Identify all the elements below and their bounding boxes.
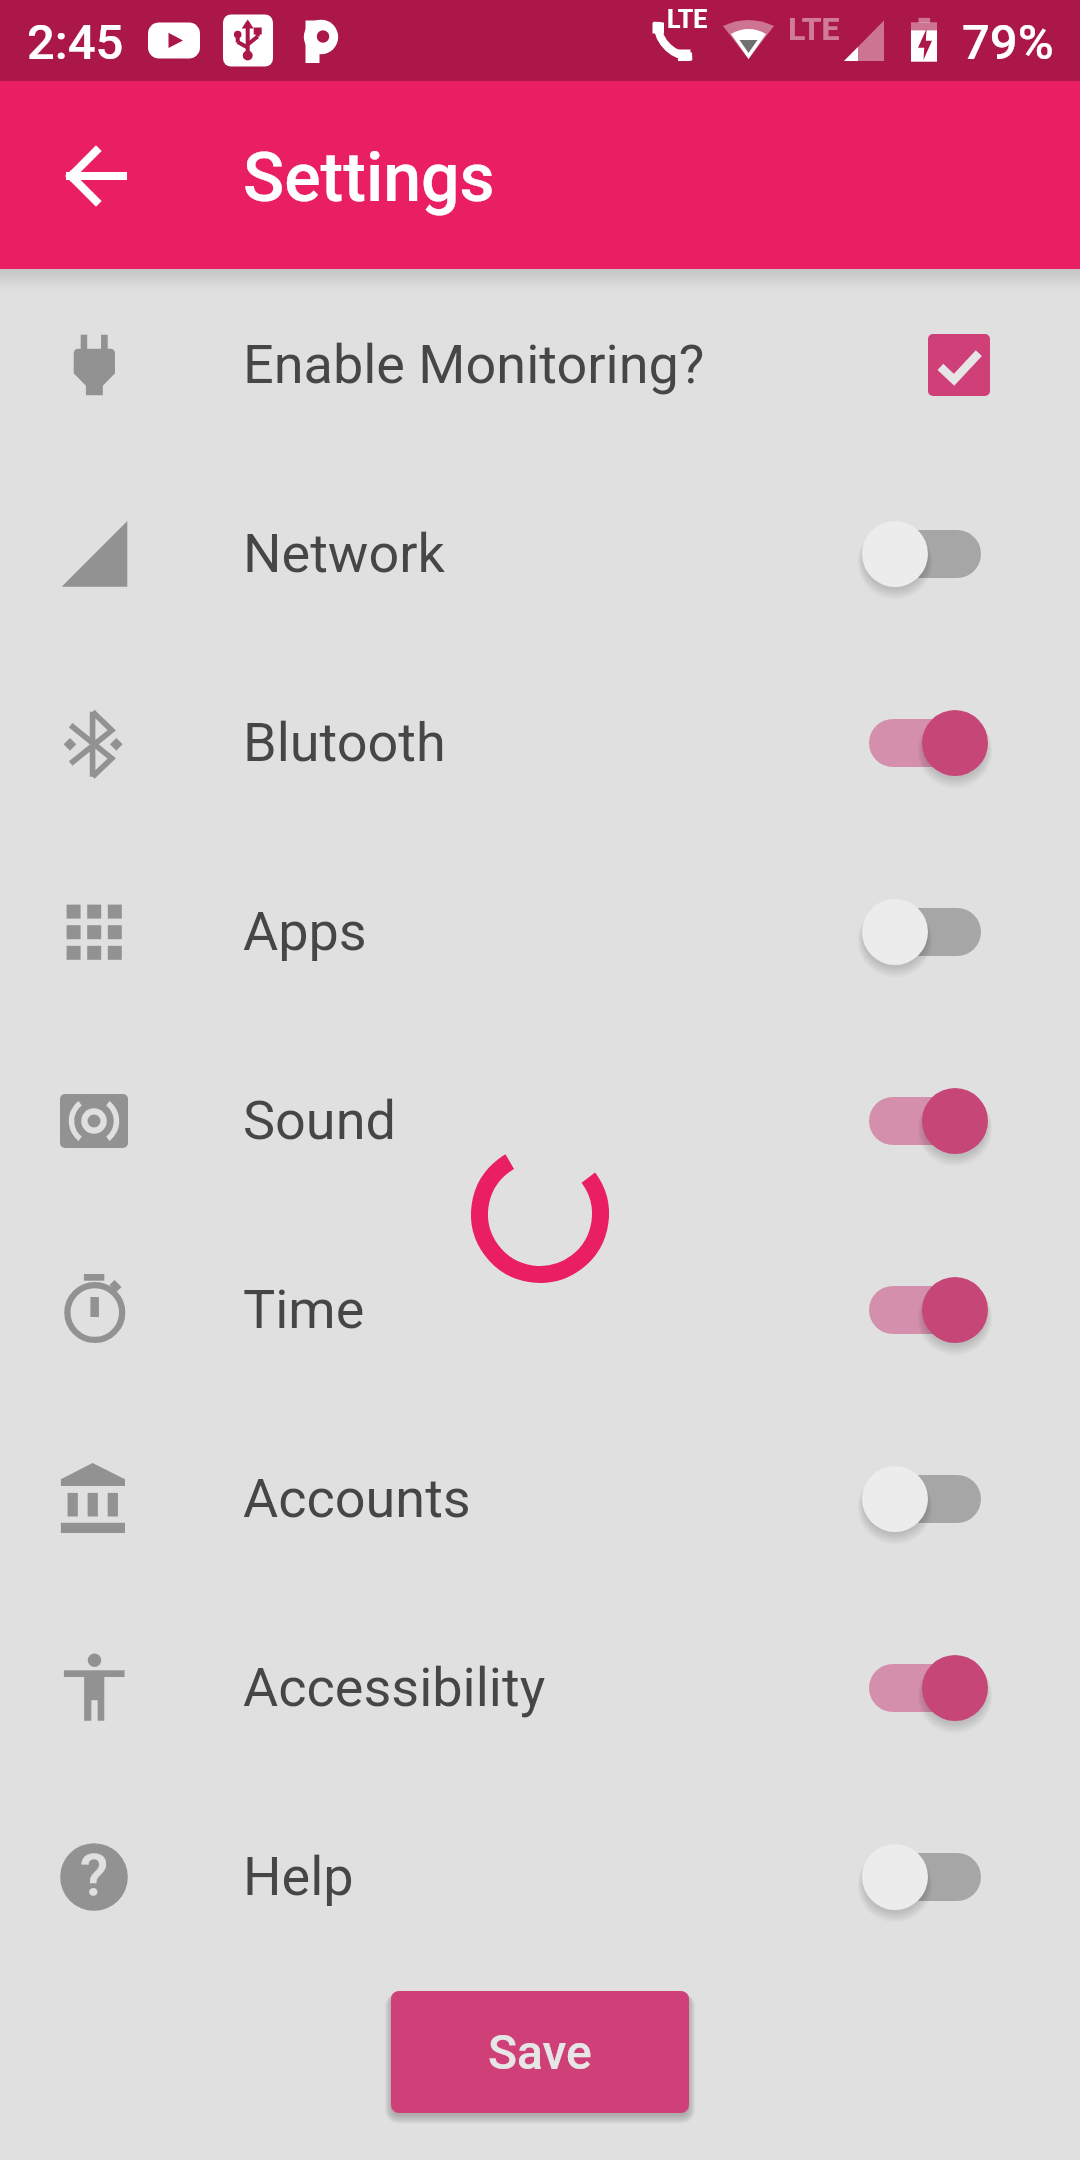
staticText: 79% [962,14,1054,71]
button[interactable]: Accessibility [0,1593,1080,1782]
staticText: Save [488,2024,592,2080]
button[interactable]: Back [40,120,150,230]
staticText: Network [243,522,445,585]
button[interactable]: Enable Monitoring? [0,270,1080,459]
staticText: LTE [667,5,708,34]
staticText: Accessibility [243,1656,546,1719]
staticText: 2:45 [27,14,124,71]
staticText: Accounts [243,1467,471,1530]
button[interactable]: Blutooth [0,648,1080,837]
button[interactable]: Network [0,459,1080,648]
button[interactable]: Apps [0,837,1080,1026]
staticText: Blutooth [243,711,446,774]
staticText: LTE [788,10,840,48]
button[interactable]: Accounts [0,1404,1080,1593]
staticText: Time [243,1278,365,1341]
staticText: Apps [243,900,367,963]
button[interactable]: Time [0,1215,1080,1404]
staticText: Enable Monitoring? [243,333,705,396]
button[interactable]: Save [391,1991,689,2113]
button[interactable]: ? [0,1782,1080,1971]
staticText: Help [243,1845,354,1908]
staticText: Sound [243,1089,396,1152]
staticText: Settings [243,138,495,218]
staticText: ? [80,1841,109,1909]
button[interactable]: Sound [0,1026,1080,1215]
